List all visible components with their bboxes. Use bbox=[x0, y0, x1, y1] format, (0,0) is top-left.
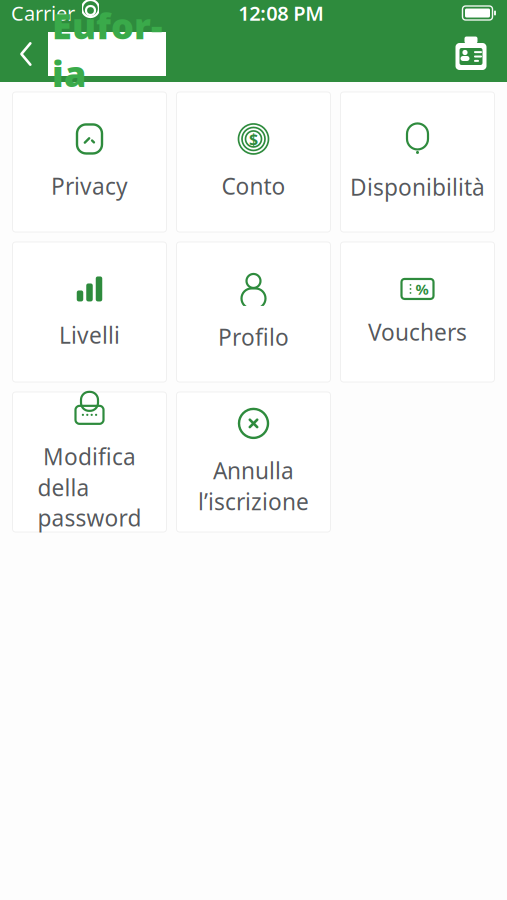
button[interactable]: Vouchers bbox=[340, 242, 494, 382]
staticText: Disponibilità bbox=[350, 172, 485, 202]
staticText: $ bbox=[249, 128, 258, 149]
staticText: 12:08 PM bbox=[238, 0, 324, 26]
staticText: Annulla bbox=[213, 455, 294, 485]
button[interactable]: Modifica della password bbox=[12, 392, 166, 532]
staticText: l’iscrizione bbox=[198, 486, 309, 517]
button[interactable]: Membership card bbox=[445, 28, 497, 80]
button[interactable]: Privacy bbox=[12, 92, 166, 232]
button[interactable]: Conto bbox=[176, 92, 330, 232]
staticText: Profilo bbox=[218, 322, 289, 352]
staticText: Conto bbox=[221, 171, 285, 201]
staticText: della password bbox=[37, 472, 141, 533]
staticText: Euforia bbox=[52, 1, 162, 97]
staticText: Livelli bbox=[59, 320, 120, 350]
button[interactable]: Disponibilità bbox=[340, 92, 494, 232]
staticText: Modifica bbox=[43, 441, 136, 471]
staticText: Privacy bbox=[51, 171, 128, 201]
button[interactable]: Profilo bbox=[176, 242, 330, 382]
staticText: Carrier bbox=[11, 0, 75, 26]
button[interactable]: Livelli bbox=[12, 242, 166, 382]
staticText: Vouchers bbox=[368, 317, 467, 347]
button[interactable]: Back bbox=[4, 28, 48, 80]
button[interactable]: Euforia Padel home bbox=[48, 32, 166, 76]
staticText: % bbox=[415, 279, 428, 299]
button[interactable]: Annulla l’iscrizione bbox=[176, 392, 330, 532]
